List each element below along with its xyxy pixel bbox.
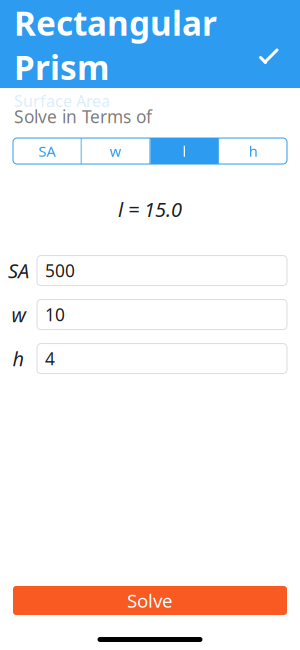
staticText: w bbox=[11, 301, 25, 328]
staticText: h bbox=[12, 345, 24, 372]
staticText: Solve bbox=[127, 588, 173, 613]
staticText: Rectangular Prism bbox=[14, 1, 217, 89]
staticText: 4 bbox=[45, 347, 55, 370]
staticText: Solve in Terms of bbox=[14, 105, 152, 128]
button[interactable]: Done bbox=[252, 39, 286, 73]
staticText: 500 bbox=[45, 259, 75, 282]
staticText: Surface Area bbox=[14, 90, 110, 111]
button[interactable]: w bbox=[82, 138, 150, 164]
button[interactable]: 500 bbox=[37, 256, 287, 286]
staticText: h bbox=[249, 141, 258, 161]
staticText: l = 15.0 bbox=[118, 196, 182, 223]
staticText: 10 bbox=[45, 303, 65, 326]
button[interactable]: h bbox=[219, 138, 287, 164]
staticText: SA bbox=[8, 257, 29, 284]
staticText: SA bbox=[38, 141, 55, 161]
button[interactable]: SA bbox=[13, 138, 81, 164]
button[interactable]: 10 bbox=[37, 300, 287, 330]
button[interactable]: Solve bbox=[13, 586, 287, 615]
staticText: w bbox=[110, 141, 122, 161]
button[interactable]: 4 bbox=[37, 344, 287, 374]
staticText: l bbox=[182, 141, 186, 161]
button[interactable]: l bbox=[150, 138, 218, 164]
